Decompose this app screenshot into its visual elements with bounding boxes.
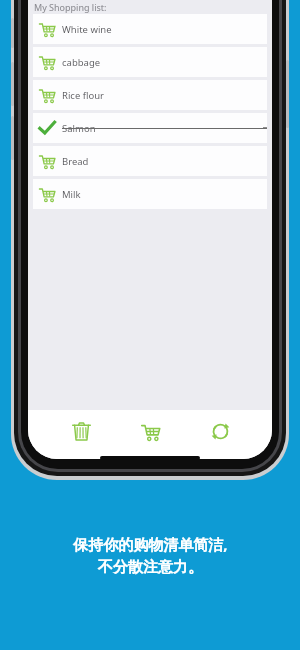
staticText: My Shopping list: (34, 1, 107, 13)
staticText: 不分散注意力。 (98, 558, 203, 577)
button[interactable]: cabbage (33, 47, 267, 77)
button[interactable]: Refresh (203, 414, 237, 448)
staticText: 保持你的购物清单简洁, (73, 534, 228, 554)
button[interactable]: Bread (33, 146, 267, 176)
staticText: Salmon (62, 122, 96, 135)
button[interactable]: Rice flour (33, 80, 267, 110)
button[interactable]: Clear list (64, 414, 98, 448)
staticText: cabbage (62, 56, 101, 69)
button[interactable]: Shopping cart (133, 414, 167, 448)
staticText: White wine (62, 23, 112, 36)
button[interactable]: White wine (33, 14, 267, 44)
button[interactable]: Salmon (33, 113, 267, 143)
staticText: Bread (62, 155, 89, 168)
staticText: Rice flour (62, 89, 105, 102)
staticText: Milk (62, 188, 81, 201)
button[interactable]: Milk (33, 179, 267, 209)
